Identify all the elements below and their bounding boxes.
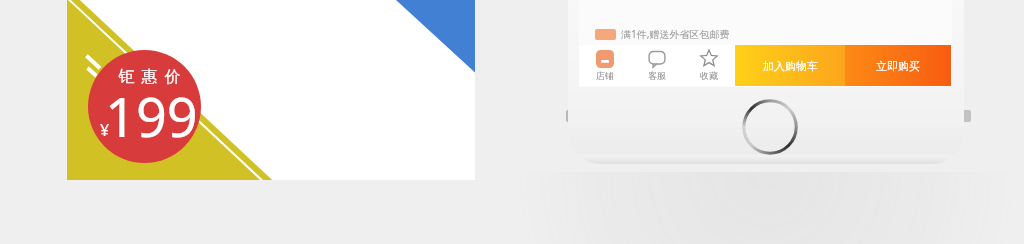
staticText: 满1件,赠送外省区包邮费 <box>621 27 730 41</box>
button[interactable]: 钜惠价 <box>88 50 201 163</box>
staticText: 加入购物车 <box>763 59 818 73</box>
staticText: 钜惠价 <box>115 67 184 87</box>
staticText: 客服 <box>648 70 666 81</box>
button[interactable]: 加入购物车 <box>735 45 845 86</box>
staticText: 199 <box>105 79 198 153</box>
button[interactable]: 立即购买 <box>845 45 951 86</box>
button[interactable]: 客服 <box>631 45 683 86</box>
button[interactable]: Home <box>742 99 798 155</box>
staticText: 收藏 <box>700 70 718 81</box>
staticText: ¥ <box>100 119 110 141</box>
button[interactable]: 收藏 <box>683 45 735 86</box>
button[interactable]: 钜惠价 <box>67 0 475 180</box>
staticText: 店铺 <box>596 70 614 81</box>
button[interactable]: 店铺 <box>579 45 631 86</box>
staticText: 立即购买 <box>876 59 920 73</box>
